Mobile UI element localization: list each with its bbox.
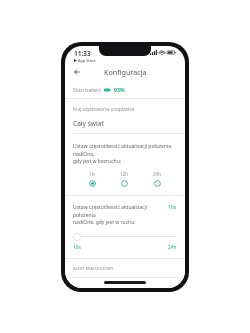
button[interactable]: 1h xyxy=(76,171,108,187)
staticText: 1h xyxy=(89,171,95,177)
staticText: Ustaw częstotliwość aktualizacji położen… xyxy=(73,143,177,164)
staticText: 93% xyxy=(114,86,125,93)
staticText: 10s xyxy=(73,244,81,251)
staticText: 12h xyxy=(120,171,129,177)
staticText: Kraj użytkowania urządzenia xyxy=(73,106,135,112)
button[interactable]: Powiadom mnie, gdy mój GPS znajdzie się … xyxy=(65,278,185,288)
staticText: 10s xyxy=(168,204,177,211)
staticText: ALERT KRADZIEŻOWY xyxy=(73,266,114,271)
button[interactable]: 12h xyxy=(108,171,141,187)
staticText: 24h xyxy=(168,244,177,251)
staticText: App Store xyxy=(78,58,96,63)
button[interactable]: Kraj użytkowania urządzenia xyxy=(65,106,185,133)
button[interactable]: 24h xyxy=(141,171,174,187)
button[interactable] xyxy=(73,232,177,241)
button[interactable]: Back xyxy=(70,65,84,79)
staticText: 24h xyxy=(153,171,162,177)
staticText: Cały świat xyxy=(73,119,104,128)
staticText: Stan baterii xyxy=(73,86,101,93)
staticText: Konfiguracja xyxy=(104,67,147,77)
staticText: 11:33 xyxy=(74,49,91,58)
staticText: Ustaw częstotliwość aktualizacji położen… xyxy=(73,204,164,225)
